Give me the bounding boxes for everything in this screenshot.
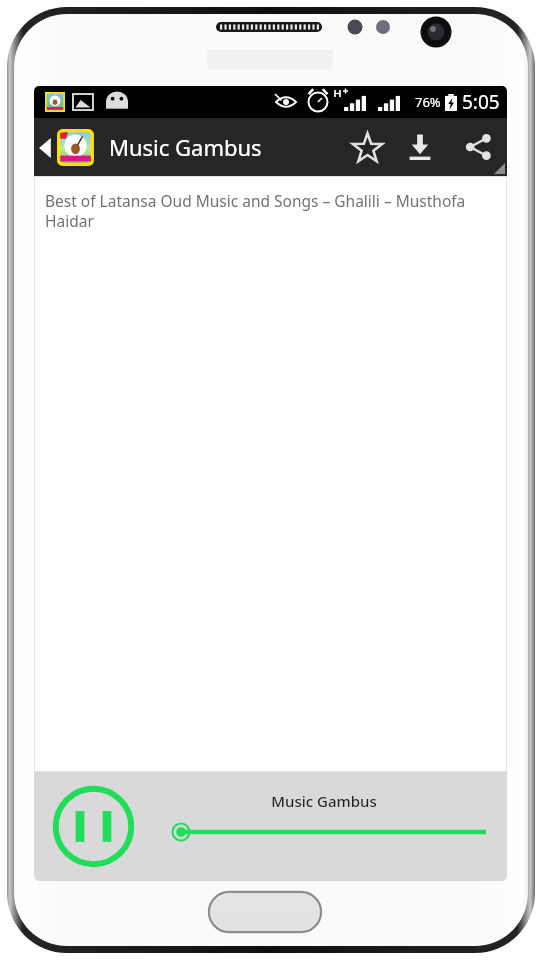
staticText: Music Gambus xyxy=(109,132,262,162)
button[interactable]: Download xyxy=(391,118,449,176)
button[interactable]: Seek bar xyxy=(168,815,490,849)
staticText: Music Gambus xyxy=(141,791,507,811)
button[interactable]: Navigate up xyxy=(34,127,100,168)
button[interactable]: Pause xyxy=(52,785,135,868)
button[interactable]: Favorite xyxy=(343,118,391,176)
staticText: 5:05 xyxy=(462,89,500,115)
staticText: 76% xyxy=(415,93,441,111)
button[interactable]: Share xyxy=(449,118,507,176)
staticText: Best of Latansa Oud Music and Songs – Gh… xyxy=(45,190,481,232)
